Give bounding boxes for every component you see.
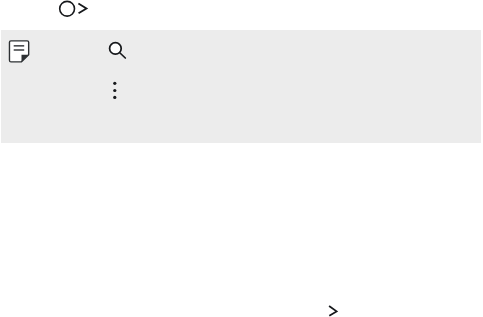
button[interactable]: Account xyxy=(57,0,89,25)
button[interactable]: More options xyxy=(94,69,135,109)
button[interactable]: Open xyxy=(313,292,353,317)
button[interactable]: Notes xyxy=(0,30,40,73)
button[interactable]: Search xyxy=(96,29,138,71)
